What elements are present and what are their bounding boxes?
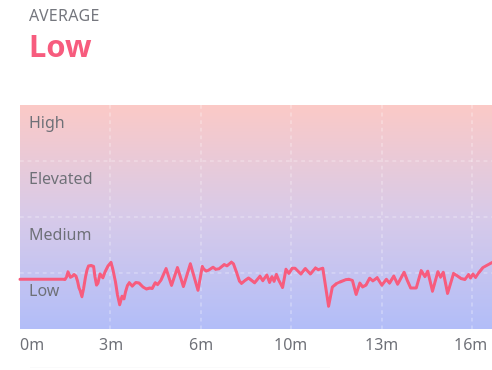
staticText: 0m xyxy=(20,333,45,355)
staticText: 3m xyxy=(99,333,124,355)
staticText: Elevated xyxy=(29,167,93,189)
staticText: 16m xyxy=(454,333,488,355)
staticText: Low xyxy=(29,24,92,66)
staticText: Medium xyxy=(29,223,92,245)
staticText: 6m xyxy=(189,333,214,355)
staticText: High xyxy=(29,111,65,133)
staticText: AVERAGE xyxy=(29,4,100,26)
button[interactable]: Stress level chart xyxy=(20,105,492,329)
staticText: 10m xyxy=(274,333,308,355)
staticText: 13m xyxy=(365,333,399,355)
staticText: Low xyxy=(29,279,60,301)
